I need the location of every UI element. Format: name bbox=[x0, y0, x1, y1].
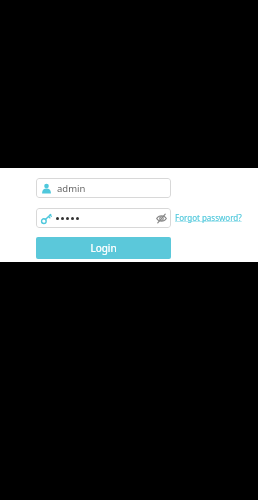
staticText: Login bbox=[90, 241, 117, 255]
staticText: Forgot password? bbox=[175, 212, 242, 223]
button[interactable]: Show password bbox=[36, 208, 171, 228]
button[interactable]: Show password bbox=[153, 210, 169, 226]
button[interactable]: admin bbox=[36, 178, 171, 198]
button[interactable]: Login bbox=[36, 237, 171, 259]
button[interactable]: Forgot password? bbox=[174, 211, 243, 224]
staticText: admin bbox=[57, 182, 86, 195]
